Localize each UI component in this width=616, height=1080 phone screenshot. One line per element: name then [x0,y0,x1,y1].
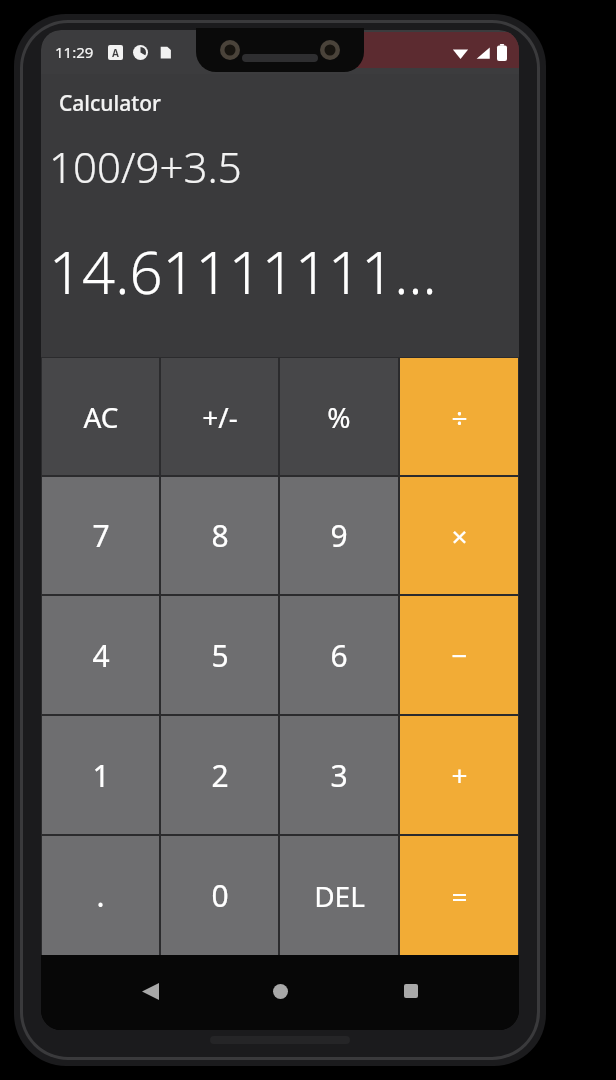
staticText: 3 [330,755,348,796]
staticText: 9 [330,515,348,556]
staticText: 2 [211,755,229,796]
staticText: = [451,877,468,915]
button[interactable]: % [280,358,398,475]
staticText: AC [83,398,119,436]
staticText: % [327,398,351,436]
button[interactable]: × [400,477,518,594]
button[interactable]: Home [258,969,302,1013]
button[interactable]: 7 [42,477,159,594]
staticText: × [451,517,468,555]
button[interactable]: 1 [42,716,159,834]
button[interactable]: 5 [161,596,278,714]
button[interactable]: 0 [161,836,278,955]
staticText: DEL [314,877,365,915]
staticText: A [112,46,119,60]
staticText: 8 [211,515,229,556]
button[interactable]: +/- [161,358,278,475]
staticText: 6 [330,635,348,676]
button[interactable]: = [400,836,518,955]
staticText: 1 [92,755,110,796]
button[interactable]: ÷ [400,358,518,475]
staticText: 7 [92,515,110,556]
button[interactable]: 6 [280,596,398,714]
button[interactable]: Back [128,969,172,1013]
staticText: +/- [202,398,238,436]
staticText: 14.61111111… [49,232,437,311]
staticText: 100/9+3.5 [49,138,242,195]
button[interactable]: 4 [42,596,159,714]
button[interactable]: 2 [161,716,278,834]
staticText: ÷ [451,398,468,436]
button[interactable]: . [42,836,159,955]
button[interactable]: 9 [280,477,398,594]
button[interactable]: 8 [161,477,278,594]
button[interactable]: + [400,716,518,834]
button[interactable]: DEL [280,836,398,955]
staticText: 5 [211,635,229,676]
staticText: 11:29 [55,42,94,62]
button[interactable]: − [400,596,518,714]
button[interactable]: 3 [280,716,398,834]
staticText: 4 [92,635,110,676]
button[interactable]: Recent apps [389,969,433,1013]
staticText: + [451,756,468,794]
staticText: Calculator [59,89,161,118]
staticText: . [96,875,105,916]
button[interactable]: AC [42,358,159,475]
staticText: 0 [211,875,229,916]
staticText: − [451,636,468,674]
